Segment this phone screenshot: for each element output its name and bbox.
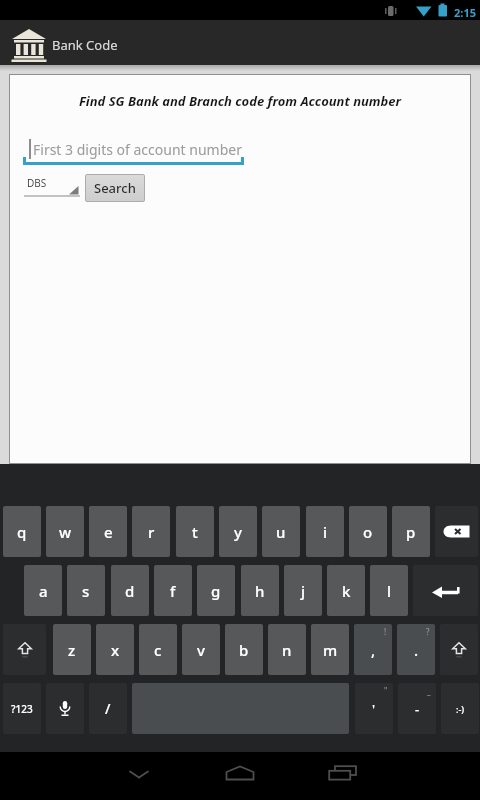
button[interactable]: a <box>24 565 62 616</box>
staticText: e <box>104 522 113 542</box>
staticText: Search <box>94 179 136 197</box>
staticText: :-) <box>456 703 465 715</box>
staticText: w <box>59 522 72 542</box>
button[interactable]: i <box>306 506 344 557</box>
button[interactable]: :-) <box>441 683 479 734</box>
button[interactable]: q <box>3 506 41 557</box>
staticText: z <box>68 640 76 660</box>
button[interactable] <box>46 683 84 734</box>
staticText: s <box>82 581 90 601</box>
staticText: y <box>234 522 242 542</box>
button[interactable] <box>328 765 358 781</box>
button[interactable]: g <box>197 565 235 616</box>
staticText: g <box>211 581 221 601</box>
button[interactable]: h <box>241 565 279 616</box>
staticText: j <box>301 581 306 601</box>
button[interactable]: w <box>46 506 84 557</box>
staticText: x <box>111 640 120 660</box>
staticText: ?123 <box>11 702 33 716</box>
button[interactable]: r <box>132 506 170 557</box>
button[interactable]: - <box>398 683 436 734</box>
staticText: d <box>125 581 135 601</box>
button[interactable] <box>24 172 80 196</box>
staticText: n <box>282 640 292 660</box>
button[interactable] <box>413 565 478 616</box>
staticText: First 3 digits of account number <box>33 140 293 164</box>
button[interactable]: e <box>89 506 127 557</box>
staticText: t <box>192 522 198 542</box>
button[interactable] <box>128 768 150 780</box>
button[interactable] <box>3 624 46 675</box>
staticText: . <box>414 640 419 660</box>
staticText: , <box>371 640 376 660</box>
button[interactable]: Search <box>85 174 145 202</box>
staticText: / <box>105 699 111 718</box>
staticText: m <box>323 640 338 660</box>
staticText: - <box>415 700 420 718</box>
button[interactable]: j <box>284 565 322 616</box>
staticText: r <box>148 522 155 542</box>
staticText: c <box>154 640 162 660</box>
staticText: DBS <box>27 176 77 193</box>
button[interactable]: u <box>262 506 300 557</box>
button[interactable]: n <box>268 624 306 675</box>
button[interactable]: . <box>397 624 435 675</box>
button[interactable]: p <box>392 506 430 557</box>
staticText: Find SG Bank and Branch code from Accoun… <box>0 92 480 114</box>
staticText: a <box>39 581 48 601</box>
button[interactable]: t <box>176 506 214 557</box>
staticText: u <box>276 522 286 542</box>
button[interactable]: o <box>349 506 387 557</box>
button[interactable]: s <box>67 565 105 616</box>
staticText: q <box>17 522 27 542</box>
staticText: h <box>255 581 265 601</box>
button[interactable]: l <box>370 565 408 616</box>
staticText: o <box>363 522 373 542</box>
button[interactable]: / <box>89 683 127 734</box>
button[interactable]: k <box>327 565 365 616</box>
staticText: 2:15 <box>454 5 480 24</box>
staticText: _ <box>427 685 431 696</box>
button[interactable]: f <box>154 565 192 616</box>
staticText: " <box>384 685 388 696</box>
button[interactable]: b <box>225 624 263 675</box>
staticText: b <box>239 640 249 660</box>
staticText: ! <box>384 626 387 637</box>
staticText: Bank Code <box>52 36 202 58</box>
button[interactable]: , <box>354 624 392 675</box>
button[interactable]: y <box>219 506 257 557</box>
button[interactable] <box>225 765 255 781</box>
button[interactable] <box>435 506 478 557</box>
staticText: i <box>323 522 328 542</box>
staticText: ? <box>426 626 430 637</box>
button[interactable]: z <box>53 624 91 675</box>
staticText: l <box>387 581 392 601</box>
button[interactable]: ' <box>355 683 393 734</box>
staticText: k <box>342 581 351 601</box>
staticText: p <box>406 522 416 542</box>
button[interactable]: x <box>96 624 134 675</box>
button[interactable]: m <box>311 624 349 675</box>
button[interactable]: v <box>182 624 220 675</box>
button[interactable]: ?123 <box>3 683 41 734</box>
staticText: v <box>197 640 205 660</box>
button[interactable]: c <box>139 624 177 675</box>
staticText: f <box>170 581 176 601</box>
button[interactable]: d <box>111 565 149 616</box>
button[interactable] <box>440 624 478 675</box>
staticText: ' <box>372 700 376 718</box>
